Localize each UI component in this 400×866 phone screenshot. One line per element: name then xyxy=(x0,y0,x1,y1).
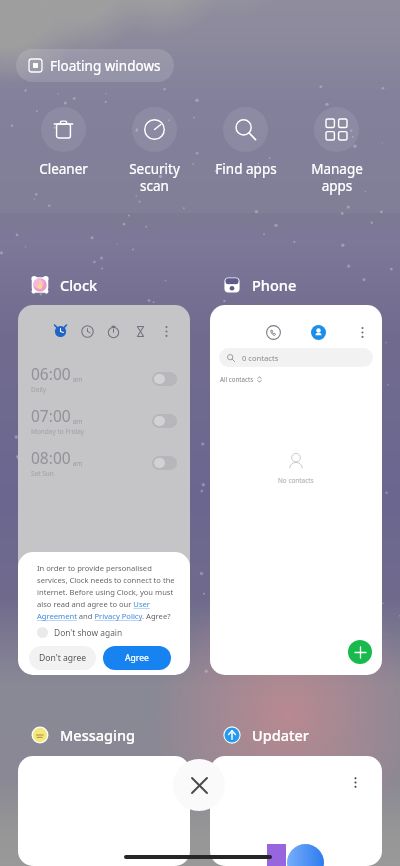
button[interactable]: Manage apps xyxy=(291,107,382,195)
button[interactable]: Close all xyxy=(173,759,225,811)
staticText: Daily xyxy=(31,385,47,394)
staticText: 07:00 xyxy=(31,405,71,426)
staticText: 08:00 xyxy=(31,447,71,468)
button[interactable]: Find apps xyxy=(200,107,291,178)
staticText: In order to provide personalised service… xyxy=(37,563,179,622)
button[interactable]: Updater xyxy=(223,722,309,748)
staticText: Clock xyxy=(60,275,98,295)
button[interactable]: Agree xyxy=(103,646,171,670)
staticText: Messaging xyxy=(60,725,136,745)
button[interactable]: 0 contacts xyxy=(219,348,373,367)
staticText: 06:00 xyxy=(31,363,71,384)
staticText: 0 contacts xyxy=(242,353,279,363)
button[interactable]: Cleaner xyxy=(18,107,109,178)
staticText: am xyxy=(71,459,83,468)
button[interactable]: Phone xyxy=(223,272,297,298)
button[interactable]: Clock xyxy=(31,272,98,298)
staticText: Cleaner xyxy=(39,160,88,178)
button[interactable] xyxy=(18,756,190,866)
staticText: Don't agree xyxy=(39,652,87,664)
staticText: All contacts xyxy=(220,375,254,383)
staticText: am xyxy=(71,417,83,426)
staticText: Manage apps xyxy=(311,160,363,195)
button[interactable]: 06:00 xyxy=(18,305,190,675)
button[interactable]: Don't agree xyxy=(29,646,96,670)
staticText: Updater xyxy=(252,725,309,745)
button[interactable]: Messaging xyxy=(31,722,136,748)
button[interactable]: Don't show again xyxy=(37,627,123,638)
staticText: Security scan xyxy=(129,160,180,195)
staticText: No contacts xyxy=(278,476,314,485)
button[interactable]: 0 contacts xyxy=(210,305,382,675)
staticText: Floating windows xyxy=(50,57,161,75)
button[interactable]: Floating windows xyxy=(16,49,174,82)
staticText: Monday to Friday xyxy=(31,427,85,436)
staticText: Phone xyxy=(252,275,297,295)
button[interactable]: All contacts xyxy=(220,375,262,383)
staticText: am xyxy=(71,375,83,384)
staticText: Don't show again xyxy=(54,627,123,638)
button[interactable]: Add contact xyxy=(348,640,372,664)
staticText: Find apps xyxy=(215,160,277,178)
button[interactable]: Security scan xyxy=(109,107,200,195)
staticText: Sat Sun xyxy=(31,469,54,478)
button[interactable] xyxy=(210,756,382,866)
staticText: Agree xyxy=(125,652,149,664)
